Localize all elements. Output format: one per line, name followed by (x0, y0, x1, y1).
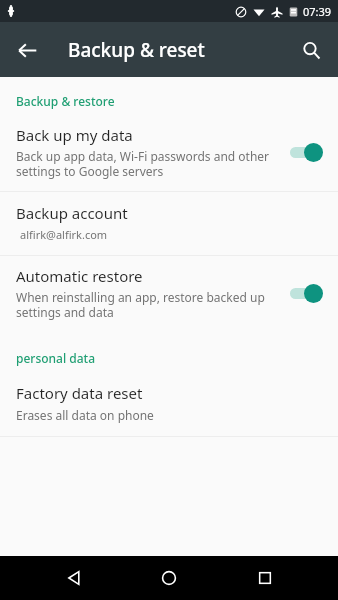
button[interactable]: Search (290, 29, 332, 71)
button[interactable]: Back (52, 556, 96, 600)
staticText: personal data (16, 350, 96, 366)
staticText: Erases all data on phone (16, 407, 154, 423)
button[interactable]: Home (147, 556, 191, 600)
staticText: Factory data reset (16, 383, 143, 403)
staticText: Automatic restore (16, 266, 143, 286)
button[interactable]: Automatic restore (0, 256, 338, 332)
staticText: Backup account (16, 203, 128, 223)
button[interactable]: Factory data reset (0, 372, 338, 436)
staticText: alfirk@alfirk.com (20, 227, 108, 242)
button[interactable]: Backup account (0, 192, 338, 255)
staticText: When reinstalling an app, restore backed… (16, 289, 265, 320)
button[interactable] (288, 282, 326, 304)
staticText: Back up app data, Wi-Fi passwords and ot… (16, 148, 270, 179)
button[interactable]: Recent apps (243, 556, 287, 600)
button[interactable]: Back (6, 29, 48, 71)
button[interactable] (288, 141, 326, 163)
staticText: Backup & reset (68, 37, 205, 63)
staticText: Backup & restore (16, 93, 115, 109)
staticText: Back up my data (16, 125, 133, 145)
button[interactable]: Back up my data (0, 115, 338, 191)
staticText: 07:39 (303, 4, 332, 19)
